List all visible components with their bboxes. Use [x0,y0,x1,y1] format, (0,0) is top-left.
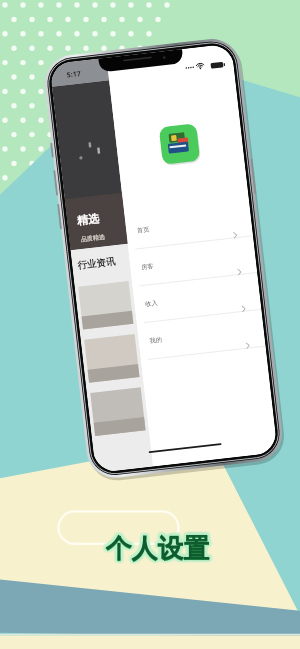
button[interactable]: 个人设置 personal settings app preview [0,0,300,649]
